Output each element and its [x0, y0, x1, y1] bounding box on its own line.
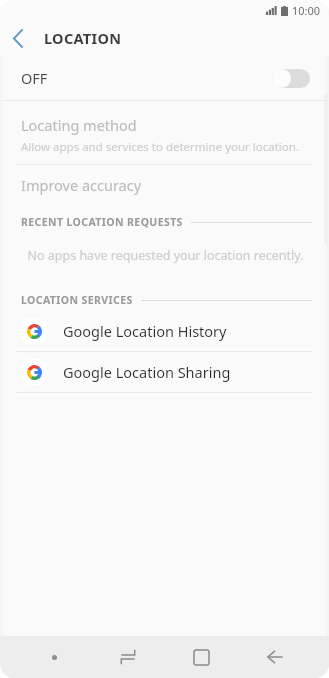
button[interactable]: Back: [256, 638, 294, 676]
staticText: LOCATION: [44, 28, 122, 48]
button[interactable]: Location off: [272, 68, 310, 88]
button[interactable]: Google Location Sharing: [3, 352, 326, 392]
staticText: Google Location Sharing: [63, 362, 231, 382]
staticText: 10:00: [292, 3, 321, 18]
button[interactable]: Show navigation bar: [35, 638, 73, 676]
staticText: Locating method: [21, 115, 137, 135]
staticText: Allow apps and services to determine you…: [21, 139, 299, 155]
button[interactable]: Locating method: [3, 110, 326, 164]
button[interactable]: Improve accuracy: [3, 165, 326, 205]
button[interactable]: Recents: [109, 638, 147, 676]
button[interactable]: Google Location History: [3, 311, 326, 351]
button[interactable]: Home: [182, 638, 220, 676]
staticText: Improve accuracy: [21, 175, 142, 195]
staticText: RECENT LOCATION REQUESTS: [21, 215, 183, 229]
staticText: OFF: [21, 68, 48, 88]
staticText: Google Location History: [63, 321, 227, 341]
staticText: LOCATION SERVICES: [21, 293, 133, 307]
button[interactable]: OFF: [3, 56, 326, 100]
staticText: No apps have requested your location rec…: [27, 247, 304, 264]
button[interactable]: Back: [0, 20, 36, 56]
